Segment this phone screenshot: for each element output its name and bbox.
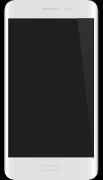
button[interactable]: Screen <box>8 18 94 157</box>
button[interactable]: Home <box>40 162 63 173</box>
other: Earpiece <box>42 7 59 11</box>
